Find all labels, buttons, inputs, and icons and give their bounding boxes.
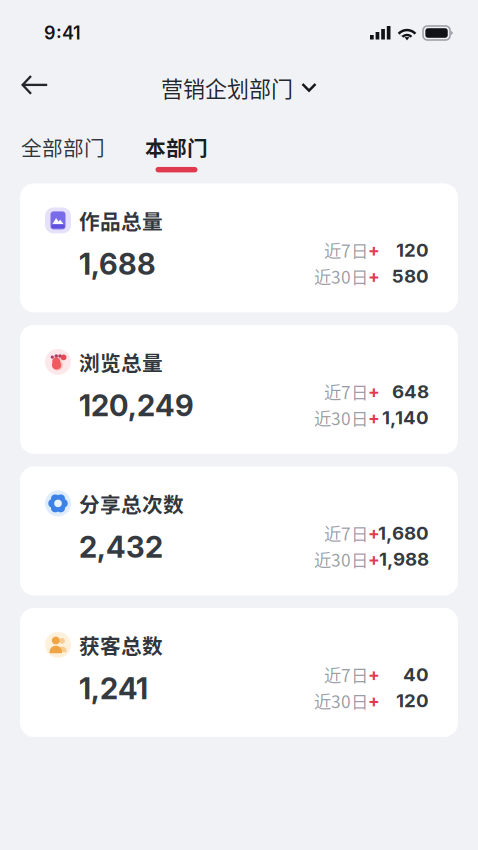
button[interactable]: 作品总量 [20,183,458,312]
staticText: + [368,381,380,402]
staticText: 1,988 [379,548,429,570]
staticText: 分享总次数 [79,488,184,518]
button[interactable]: 浏览总量 [20,325,458,454]
staticText: 浏览总量 [79,347,163,377]
staticText: + [368,407,380,428]
button[interactable]: 全部部门 [1,106,125,175]
staticText: 120 [396,239,429,261]
staticText: 580 [392,265,429,287]
staticText: 120 [396,689,429,712]
staticText: 近7日 [324,662,368,687]
staticText: 1,680 [378,522,429,544]
staticText: 近7日 [324,379,368,404]
staticText: 9:41 [44,22,81,44]
staticText: 40 [403,663,429,686]
staticText: 全部部门 [21,132,105,162]
staticText: + [368,239,380,260]
button[interactable]: 获客总数 [20,608,458,737]
staticText: + [368,266,380,287]
button[interactable]: 本部门 [125,106,228,175]
staticText: 近30日 [314,405,368,430]
staticText: 近7日 [324,520,368,545]
staticText: 近30日 [314,688,368,713]
staticText: + [368,664,380,685]
staticText: 作品总量 [79,205,163,235]
staticText: 2,432 [79,529,163,565]
staticText: 营销企划部门 [161,71,293,103]
staticText: 120,249 [79,388,194,423]
button[interactable]: Back [0,65,69,106]
staticText: 648 [392,380,429,403]
staticText: + [368,690,380,711]
staticText: 1,140 [382,406,429,429]
staticText: 本部门 [145,132,208,162]
staticText: 1,688 [79,246,156,282]
staticText: + [368,549,380,570]
button[interactable]: 分享总次数 [20,466,458,595]
staticText: 近30日 [314,263,368,289]
staticText: 近7日 [324,237,368,262]
staticText: 近30日 [314,546,368,572]
staticText: 1,241 [79,671,148,706]
staticText: + [368,522,380,543]
staticText: 获客总数 [79,630,163,660]
